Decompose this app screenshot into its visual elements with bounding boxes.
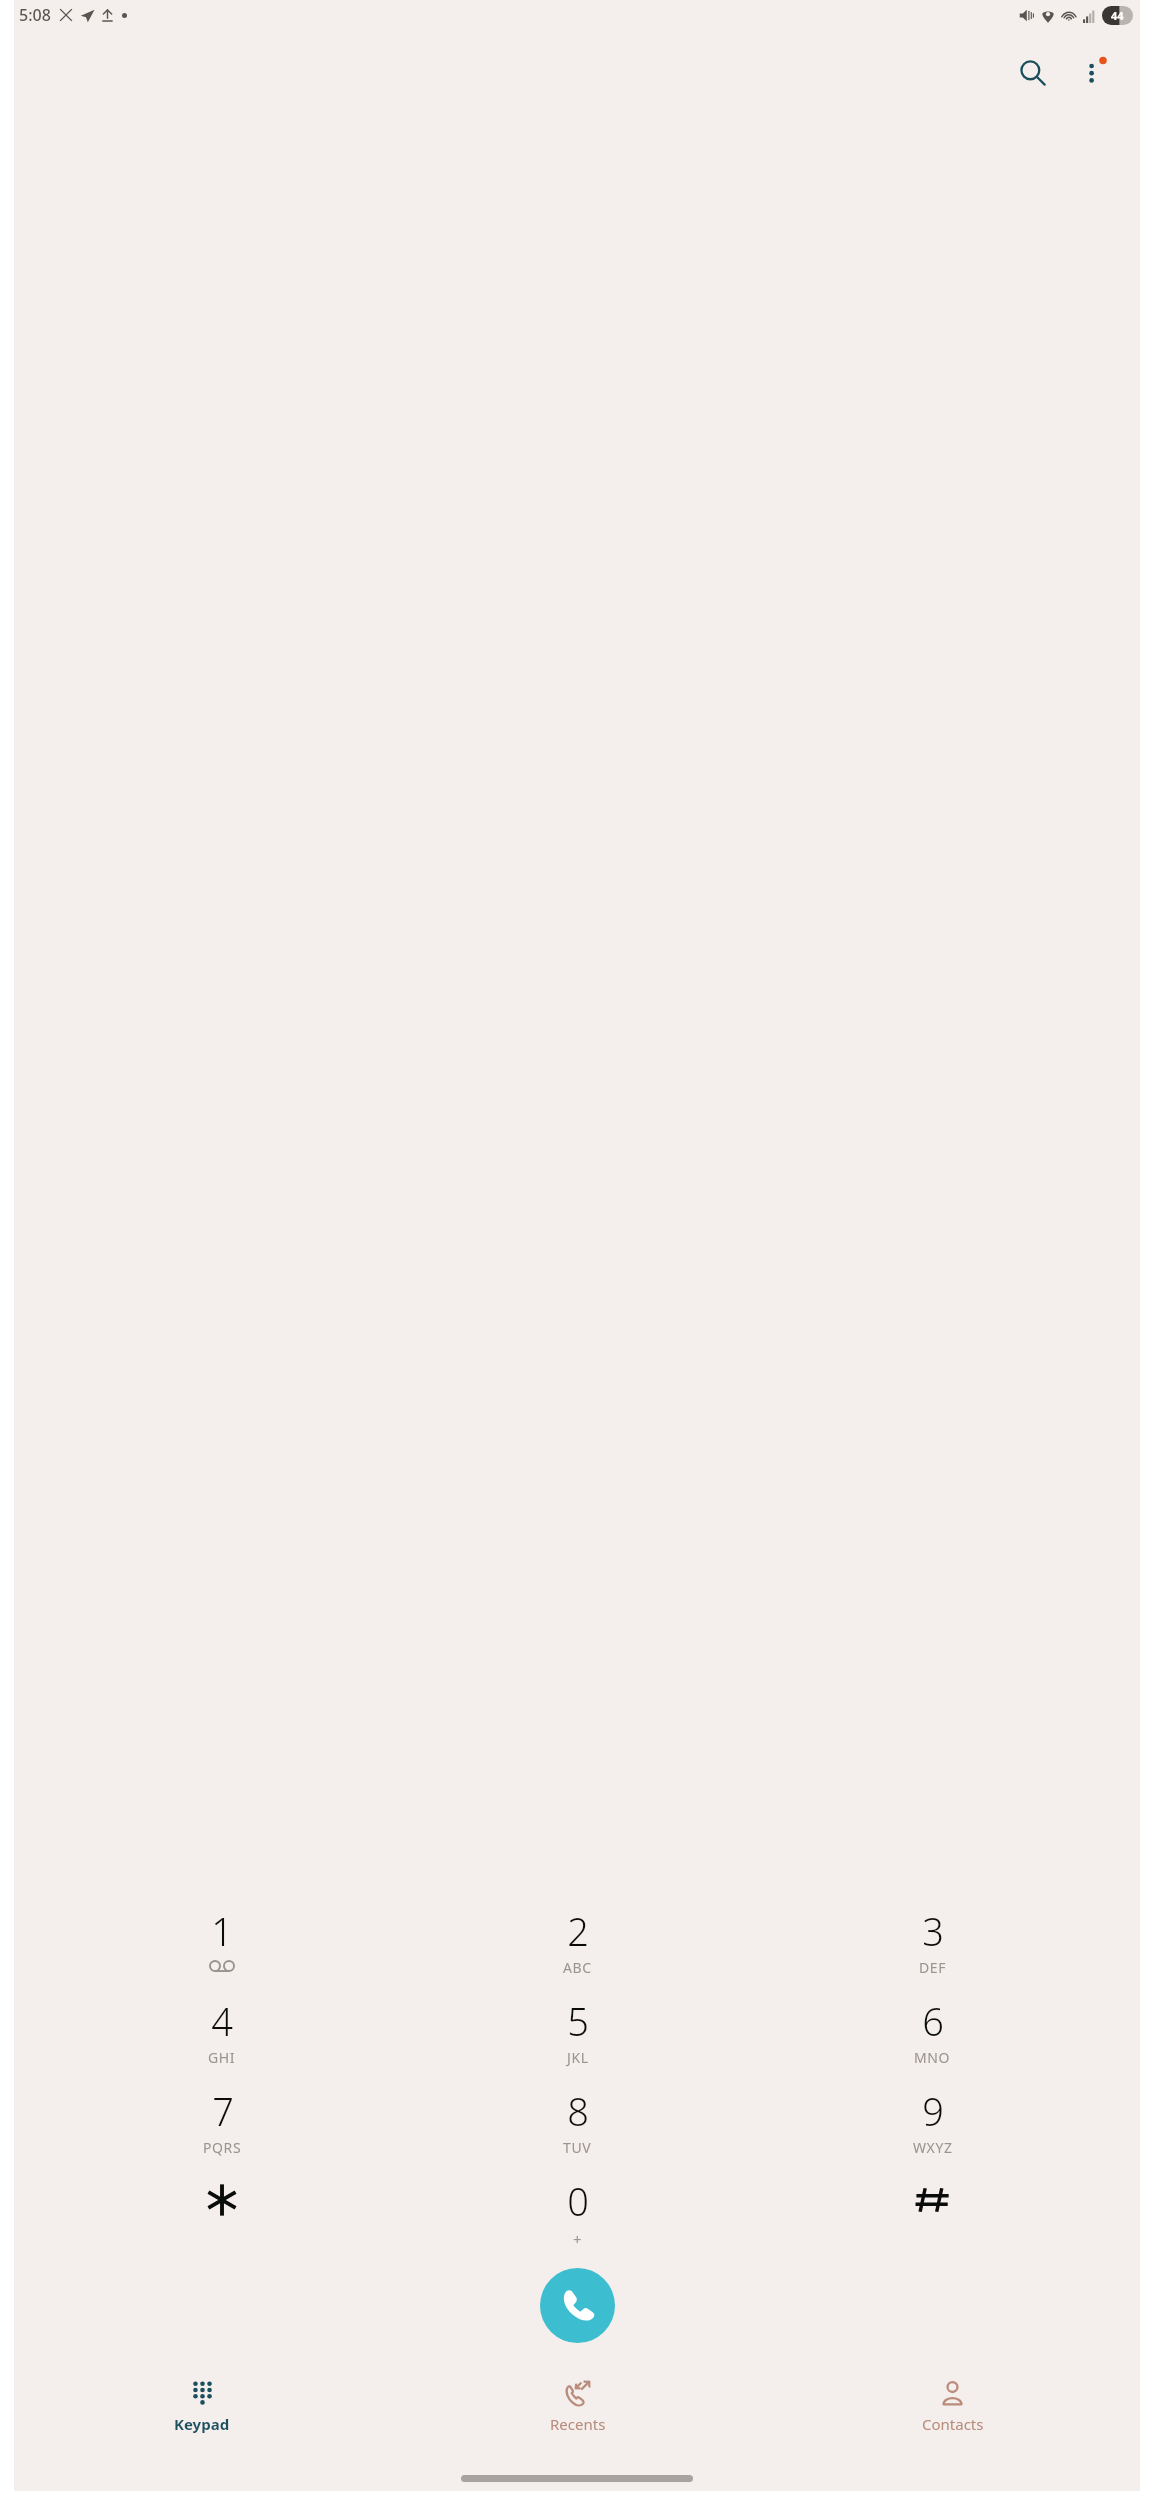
button[interactable]: 0 bbox=[400, 2175, 755, 2248]
staticText: 9 bbox=[922, 2085, 944, 2137]
staticText: MNO bbox=[914, 2048, 951, 2067]
button[interactable]: Contacts bbox=[765, 2373, 1140, 2465]
button[interactable]: 8 bbox=[400, 2085, 755, 2158]
button[interactable]: 7 bbox=[44, 2085, 400, 2158]
staticText: 5:08 bbox=[19, 4, 51, 26]
button[interactable]: More options bbox=[1066, 44, 1122, 100]
button[interactable]: 9 bbox=[755, 2085, 1110, 2158]
button[interactable] bbox=[44, 2175, 400, 2248]
staticText: 7 bbox=[212, 2085, 234, 2137]
staticText: WXYZ bbox=[913, 2138, 953, 2157]
staticText: + bbox=[573, 2229, 583, 2248]
staticText: Contacts bbox=[922, 2414, 984, 2434]
button[interactable]: 4 bbox=[44, 1995, 400, 2068]
staticText: DEF bbox=[919, 1958, 947, 1977]
button[interactable]: Keypad bbox=[14, 2373, 390, 2465]
staticText: 1 bbox=[211, 1905, 233, 1957]
staticText: 5 bbox=[567, 1995, 589, 2047]
button[interactable]: Search bbox=[1004, 44, 1060, 100]
staticText: PQRS bbox=[203, 2138, 242, 2157]
button[interactable]: 1 bbox=[44, 1905, 400, 1978]
button[interactable]: 2 bbox=[400, 1905, 755, 1978]
staticText: GHI bbox=[208, 2048, 236, 2067]
button[interactable] bbox=[755, 2175, 1110, 2248]
button[interactable]: 6 bbox=[755, 1995, 1110, 2068]
staticText: 3 bbox=[922, 1905, 944, 1957]
staticText: TUV bbox=[563, 2138, 592, 2157]
staticText: 8 bbox=[567, 2085, 589, 2137]
staticText: 6 bbox=[922, 1995, 944, 2047]
staticText: 44 bbox=[1111, 8, 1124, 23]
button[interactable]: 3 bbox=[755, 1905, 1110, 1978]
button[interactable]: Recents bbox=[390, 2373, 765, 2465]
staticText: 0 bbox=[567, 2175, 589, 2227]
staticText: ABC bbox=[563, 1958, 592, 1977]
staticText: Recents bbox=[550, 2414, 606, 2434]
staticText: 4 bbox=[211, 1995, 233, 2047]
staticText: 2 bbox=[567, 1905, 589, 1957]
staticText: Keypad bbox=[174, 2414, 230, 2434]
button[interactable]: Call bbox=[540, 2268, 615, 2343]
button[interactable]: 5 bbox=[400, 1995, 755, 2068]
staticText: JKL bbox=[567, 2048, 589, 2067]
